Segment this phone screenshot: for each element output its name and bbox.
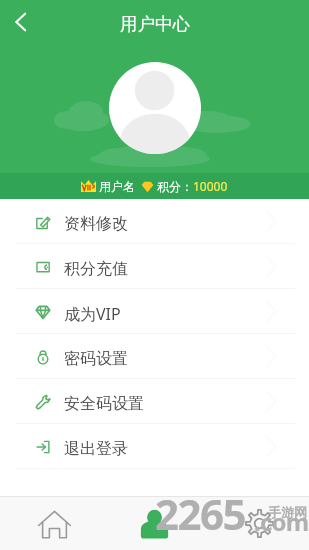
button[interactable]: Settings: [206, 497, 309, 550]
staticText: 用户名: [99, 179, 135, 194]
staticText: 手游网: [268, 504, 307, 520]
staticText: 安全码设置: [64, 394, 144, 414]
staticText: 10000: [193, 178, 228, 194]
button[interactable]: 安全码设置: [0, 379, 309, 424]
staticText: 密码设置: [64, 349, 128, 369]
staticText: 2265: [155, 485, 246, 537]
staticText: 积分：: [157, 179, 193, 194]
button[interactable]: Back: [0, 0, 40, 44]
button[interactable]: 资料修改: [0, 199, 309, 244]
staticText: 资料修改: [64, 214, 128, 234]
staticText: .com: [254, 505, 309, 538]
button[interactable]: 退出登录: [0, 424, 309, 469]
button[interactable]: 密码设置: [0, 334, 309, 379]
staticText: 积分充值: [64, 259, 128, 279]
staticText: 成为VIP: [64, 303, 121, 325]
button[interactable]: Home: [0, 497, 103, 550]
staticText: 退出登录: [64, 439, 128, 459]
button[interactable]: Profile: [103, 497, 206, 550]
button[interactable]: 成为VIP: [0, 289, 309, 334]
button[interactable]: Avatar: [109, 62, 201, 154]
button[interactable]: 积分充值: [0, 244, 309, 289]
staticText: 用户中心: [120, 13, 190, 35]
